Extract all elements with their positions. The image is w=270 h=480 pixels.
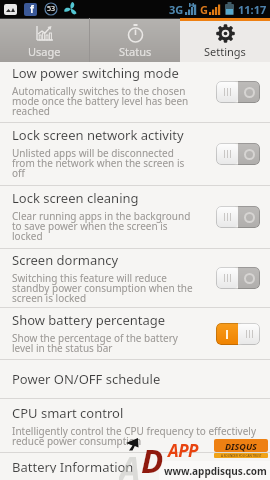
button[interactable] [216, 267, 260, 289]
staticText: Settings [204, 44, 246, 59]
staticText: Show the percentage of the battery level… [12, 331, 178, 355]
staticText: Screen dormancy [12, 251, 119, 269]
button[interactable]: Usage [0, 18, 89, 62]
button[interactable]: Status [90, 18, 180, 62]
staticText: Status [119, 44, 152, 59]
staticText: 53 [47, 4, 56, 14]
button[interactable]: Screen dormancy [0, 249, 270, 308]
button[interactable] [216, 206, 260, 228]
button[interactable] [216, 81, 260, 103]
staticText: f [30, 3, 34, 15]
staticText: Low power switching mode [12, 64, 179, 82]
staticText: A SOUNDER YOU CAN TRUST [221, 454, 262, 458]
button[interactable]: Settings [180, 18, 270, 62]
button[interactable]: CPU smart control [0, 399, 270, 453]
button[interactable]: Lock screen network activity [0, 123, 270, 186]
button[interactable]: Show battery percentage [0, 308, 270, 360]
staticText: Show battery percentage [12, 311, 166, 329]
staticText: Lock screen cleaning [12, 189, 139, 207]
button[interactable]: Low power switching mode [0, 62, 270, 123]
staticText: Intelligently control the CPU frequency … [12, 424, 256, 448]
staticText: Unlisted apps will be disconnected from … [12, 146, 185, 180]
staticText: G [200, 2, 208, 17]
button[interactable] [216, 323, 260, 345]
staticText: CPU smart control [12, 404, 124, 422]
staticText: Automatically switches to the chosen mod… [12, 84, 189, 118]
staticText: 11:17 [238, 2, 267, 17]
button[interactable]: Lock screen cleaning [0, 186, 270, 249]
staticText: Clear running apps in the background to … [12, 209, 191, 243]
button[interactable]: Power ON/OFF schedule [0, 360, 270, 399]
staticText: Switching this feature will reduce stand… [12, 271, 193, 305]
staticText: Usage [28, 44, 61, 59]
button[interactable]: Battery Information [0, 453, 270, 480]
staticText: 3G [169, 2, 184, 17]
button[interactable] [216, 143, 260, 165]
staticText: Battery Information [12, 458, 134, 473]
staticText: DISQUS [225, 440, 257, 452]
staticText: Lock screen network activity [12, 126, 184, 144]
staticText: D [141, 438, 164, 480]
staticText: Power ON/OFF schedule [12, 370, 161, 388]
staticText: www.appdisqus.com [164, 464, 267, 478]
staticText: A [119, 445, 141, 480]
staticText: APP [168, 439, 198, 462]
